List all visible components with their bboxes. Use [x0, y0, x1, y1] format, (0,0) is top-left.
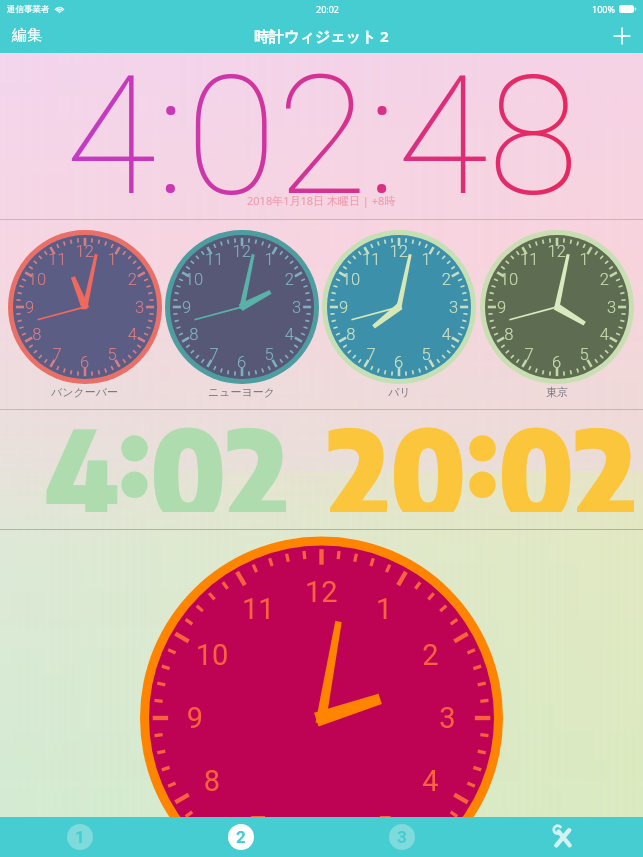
- staticText: 20:02: [316, 3, 340, 15]
- staticText: 2018年1月18日 木曜日 | +8時: [247, 193, 396, 208]
- staticText: 0: [390, 393, 467, 512]
- staticText: 0: [498, 393, 575, 512]
- staticText: バンクーバー: [51, 385, 119, 399]
- staticText: 4: [45, 393, 119, 512]
- button[interactable]: [165, 230, 319, 384]
- button[interactable]: 2: [160, 817, 321, 857]
- button[interactable]: Add clock: [601, 19, 643, 53]
- button[interactable]: 2: [328, 393, 637, 512]
- staticText: 100%: [592, 3, 615, 15]
- staticText: 東京: [546, 385, 568, 399]
- staticText: 2: [236, 827, 246, 847]
- staticText: 0: [150, 393, 227, 512]
- staticText: 4:02:48: [65, 39, 579, 205]
- button[interactable]: 編集: [0, 19, 54, 52]
- staticText: 3: [397, 827, 407, 847]
- button[interactable]: 4: [45, 393, 289, 512]
- staticText: 編集: [12, 26, 42, 45]
- button[interactable]: [8, 230, 162, 384]
- staticText: 時計ウィジェット 2: [254, 26, 389, 46]
- staticText: 2: [227, 393, 289, 512]
- button[interactable]: 1: [0, 817, 160, 857]
- button[interactable]: [480, 230, 634, 384]
- staticText: 1: [75, 827, 85, 847]
- staticText: 2: [575, 393, 637, 512]
- button[interactable]: [322, 230, 476, 384]
- staticText: ニューヨーク: [208, 385, 276, 399]
- button[interactable]: 3: [321, 817, 482, 857]
- staticText: 2: [328, 393, 390, 512]
- button[interactable]: Settings: [482, 817, 643, 857]
- button[interactable]: [0, 530, 643, 817]
- staticText: 通信事業者: [7, 4, 50, 15]
- staticText: パリ: [388, 385, 411, 399]
